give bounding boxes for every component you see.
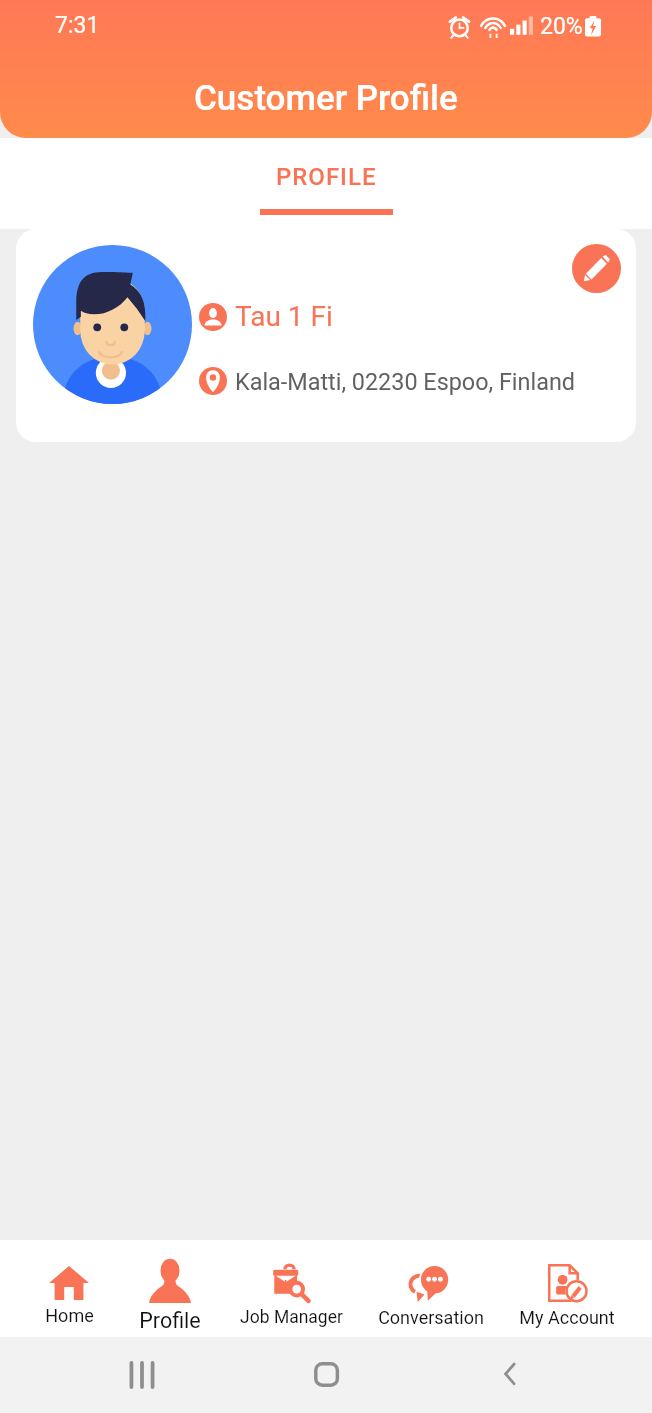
- button[interactable]: Edit profile: [572, 244, 621, 293]
- staticText: Home: [45, 1305, 94, 1326]
- button[interactable]: PROFILE: [260, 138, 393, 229]
- button[interactable]: Job Manager: [221, 1240, 361, 1337]
- staticText: My Account: [519, 1307, 615, 1328]
- staticText: Customer Profile: [194, 78, 458, 119]
- button[interactable]: Conversation: [361, 1240, 501, 1337]
- other: Back: [488, 1353, 532, 1397]
- button[interactable]: Profile: [100, 1240, 240, 1337]
- other: Home: [304, 1353, 348, 1397]
- button[interactable]: My Account: [497, 1240, 637, 1337]
- staticText: Tau 1 Fi: [235, 300, 333, 333]
- button[interactable]: Home: [0, 1240, 139, 1337]
- staticText: 20%: [540, 13, 583, 40]
- staticText: Kala-Matti, 02230 Espoo, Finland: [235, 368, 575, 395]
- staticText: Conversation: [378, 1307, 484, 1328]
- staticText: Job Manager: [240, 1307, 343, 1328]
- other: Recents: [120, 1353, 164, 1397]
- staticText: 7:31: [55, 12, 100, 39]
- staticText: Profile: [139, 1308, 201, 1333]
- staticText: PROFILE: [276, 163, 377, 191]
